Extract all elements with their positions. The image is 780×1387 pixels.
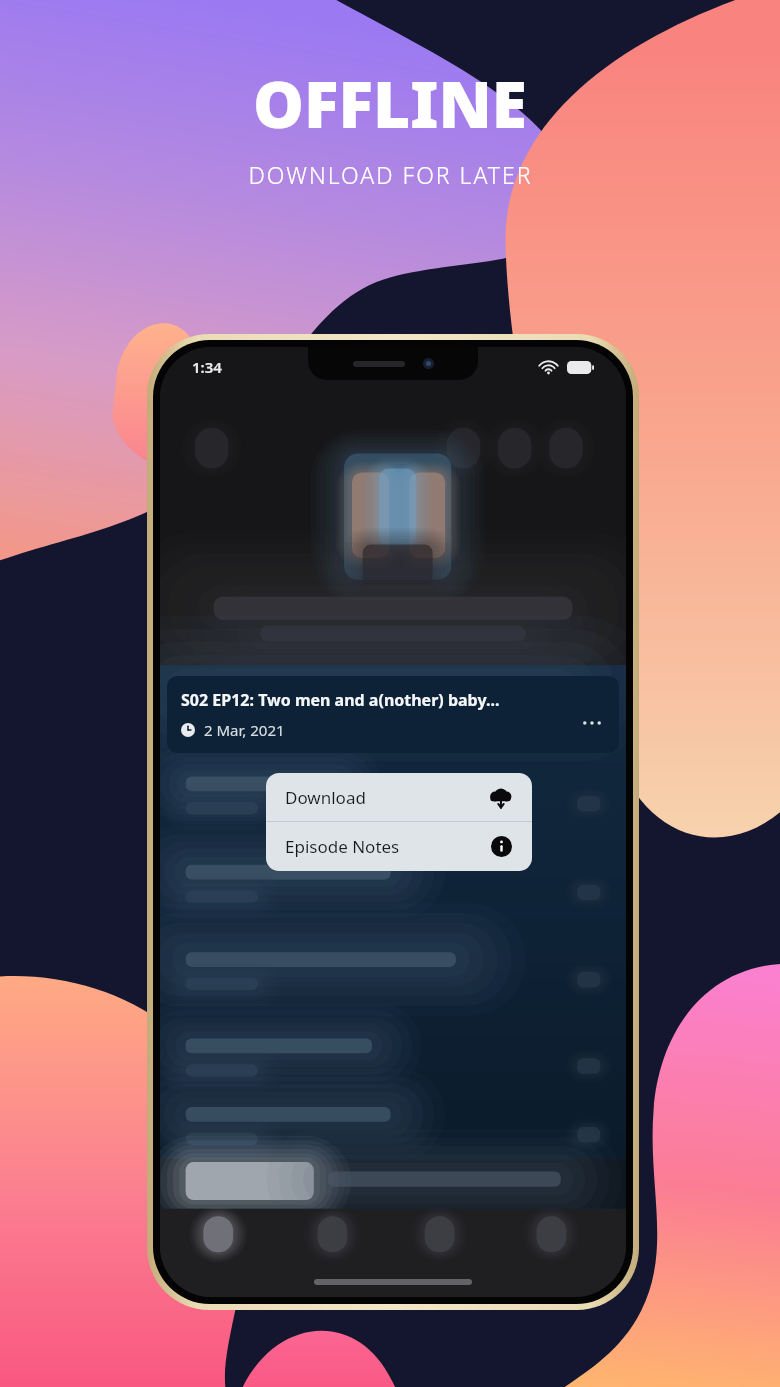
button[interactable]: Episode Notes xyxy=(266,822,532,871)
staticText: 2 Mar, 2021 xyxy=(204,720,285,740)
staticText: OFFLINE xyxy=(253,60,527,147)
staticText: S02 EP12: Two men and a(nother) baby... xyxy=(181,689,500,711)
button[interactable]: S02 EP12: Two men and a(nother) baby... xyxy=(167,676,619,753)
staticText: Episode Notes xyxy=(285,835,400,858)
button[interactable]: Download xyxy=(266,773,532,821)
button[interactable]: More options xyxy=(575,706,609,740)
staticText: DOWNLOAD FOR LATER xyxy=(248,159,533,190)
staticText: Download xyxy=(285,786,366,809)
staticText: 1:34 xyxy=(192,357,222,377)
